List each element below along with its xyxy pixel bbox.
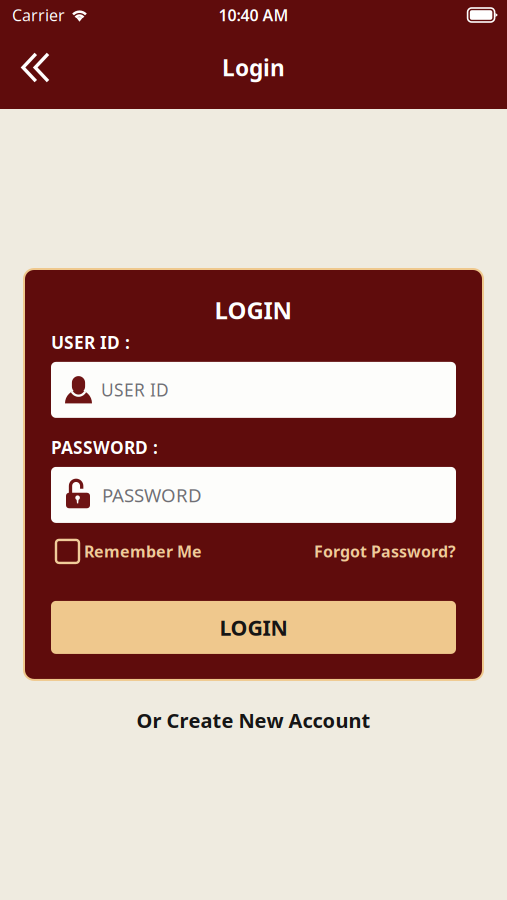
button[interactable]: LOGIN [51, 601, 456, 654]
staticText: Or Create New Account [136, 707, 370, 733]
staticText: Remember Me [84, 541, 202, 562]
staticText: LOGIN [219, 613, 287, 641]
button[interactable]: Back [0, 42, 63, 97]
staticText: USER ID : [51, 331, 130, 354]
button[interactable]: Remember Me [51, 540, 202, 563]
button[interactable]: Forgot Password? [314, 541, 456, 562]
staticText: LOGIN [214, 294, 292, 326]
staticText: PASSWORD : [51, 436, 158, 459]
staticText: 10:40 AM [218, 4, 288, 26]
staticText: Login [222, 52, 285, 82]
staticText: Forgot Password? [314, 541, 456, 562]
button[interactable]: Or Create New Account [124, 699, 382, 741]
staticText: USER ID [101, 378, 169, 401]
staticText: Carrier [12, 4, 65, 26]
staticText: PASSWORD [102, 482, 202, 507]
